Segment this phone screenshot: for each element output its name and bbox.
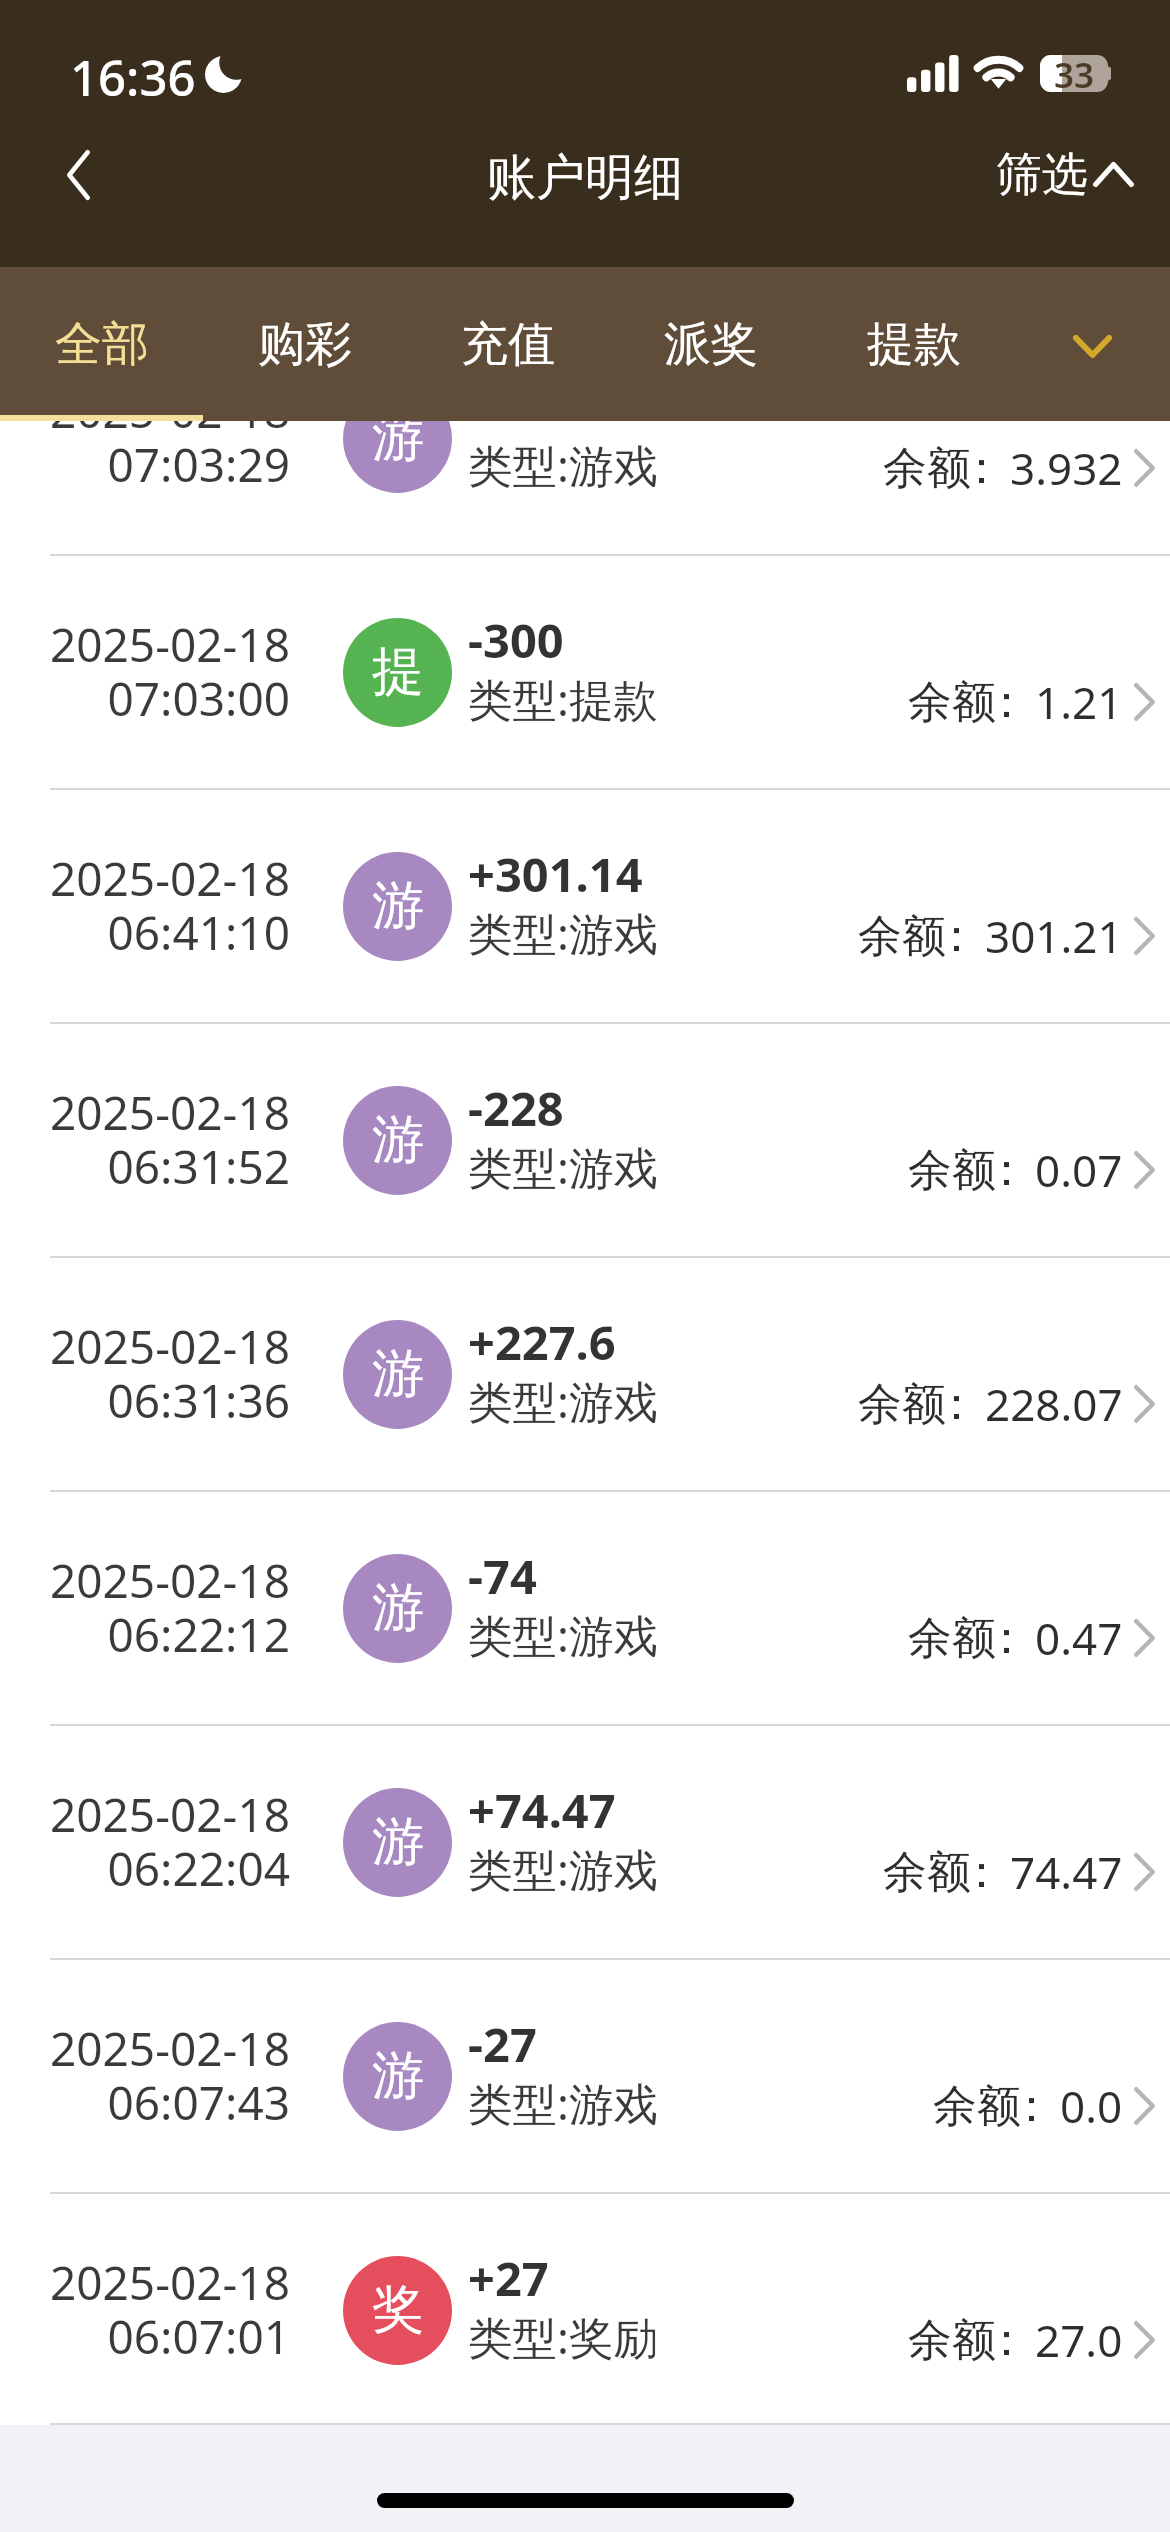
staticText: +301.14 [468, 842, 643, 906]
staticText: 类型:奖励 [468, 2306, 658, 2367]
staticText: 33 [1054, 55, 1095, 88]
staticText: 类型:游戏 [468, 2072, 658, 2133]
staticText: 游 [372, 421, 424, 471]
staticText: -74 [468, 1544, 537, 1608]
staticText: 账户明细 [487, 147, 683, 209]
staticText: 奖 [372, 2277, 424, 2343]
staticText: 类型:游戏 [468, 902, 658, 963]
staticText: 2025-02-18 06:22:12 [48, 1549, 290, 1665]
button[interactable]: 2025-02-18 06:22:12 [0, 1492, 1170, 1724]
staticText: 2025-02-18 07:03:00 [48, 613, 290, 729]
staticText: 提 [372, 639, 424, 705]
staticText: 余额 [883, 1845, 971, 1900]
staticText: 游 [372, 1809, 424, 1875]
button[interactable]: 2025-02-18 07:03:29 [0, 421, 1170, 554]
staticText: ： [984, 1610, 991, 1667]
button[interactable]: 2025-02-18 06:07:01 [0, 2194, 1170, 2425]
button[interactable]: Back [0, 115, 148, 235]
staticText: ： [984, 674, 991, 731]
staticText: ： [984, 2312, 991, 2369]
staticText: -228 [468, 1076, 564, 1140]
button[interactable]: 筛选 [996, 126, 1138, 226]
staticText: 筛选 [996, 146, 1088, 204]
staticText: 2025-02-18 06:22:04 [48, 1783, 290, 1899]
staticText: 购彩 [258, 315, 352, 374]
staticText: 余额 [908, 1143, 996, 1198]
staticText: 2025-02-18 06:31:52 [48, 1081, 290, 1197]
staticText: 余额 [933, 2079, 1021, 2134]
staticText: 余额 [858, 909, 946, 964]
staticText: 余额 [908, 675, 996, 730]
staticText: 提款 [867, 315, 961, 374]
staticText: 类型:提款 [468, 668, 658, 729]
staticText: 3.932 [1010, 438, 1123, 498]
staticText: ： [984, 1142, 991, 1199]
button[interactable]: 充值 [406, 267, 609, 421]
staticText: ： [959, 440, 966, 497]
staticText: 余额 [908, 2313, 996, 2368]
staticText: 16:36 [70, 44, 196, 111]
staticText: -300 [468, 608, 564, 672]
staticText: 2025-02-18 06:31:36 [48, 1315, 290, 1431]
button[interactable]: 购彩 [203, 267, 406, 421]
staticText: 0.0 [1060, 2076, 1123, 2136]
button[interactable]: 2025-02-18 06:22:04 [0, 1726, 1170, 1958]
staticText: 2025-02-18 06:07:43 [48, 2017, 290, 2133]
button[interactable]: 派奖 [609, 267, 812, 421]
staticText: 游 [372, 2043, 424, 2109]
staticText: 游 [372, 1575, 424, 1641]
staticText: 1.21 [1035, 672, 1123, 732]
button[interactable]: 2025-02-18 06:07:43 [0, 1960, 1170, 2192]
staticText: ： [934, 908, 941, 965]
staticText: 充值 [461, 315, 555, 374]
staticText: 游 [372, 1107, 424, 1173]
staticText: ： [1009, 2078, 1016, 2135]
staticText: 类型:游戏 [468, 1370, 658, 1431]
staticText: 0.47 [1035, 1608, 1123, 1668]
staticText: 全部 [55, 315, 149, 374]
staticText: 类型:游戏 [468, 1136, 658, 1197]
staticText: 游 [372, 873, 424, 939]
button[interactable]: 2025-02-18 06:41:10 [0, 790, 1170, 1022]
staticText: 228.07 [985, 1374, 1123, 1434]
staticText: 游 [372, 1341, 424, 1407]
staticText: +227.6 [468, 1310, 616, 1374]
button[interactable]: Expand filters [1015, 267, 1170, 421]
staticText: 类型:游戏 [468, 1604, 658, 1665]
staticText: 74.47 [1010, 1842, 1123, 1902]
staticText: 类型:游戏 [468, 434, 658, 495]
staticText: ： [959, 1844, 966, 1901]
staticText: +74.47 [468, 1778, 616, 1842]
staticText: 余额 [908, 1611, 996, 1666]
staticText: 类型:游戏 [468, 1838, 658, 1899]
staticText: +27 [468, 2246, 549, 2310]
staticText: 0.07 [1035, 1140, 1123, 1200]
staticText: 余额 [858, 1377, 946, 1432]
staticText: 余额 [883, 441, 971, 496]
staticText: 27.0 [1035, 2310, 1123, 2370]
button[interactable]: 2025-02-18 06:31:52 [0, 1024, 1170, 1256]
staticText: 2025-02-18 07:03:29 [48, 421, 290, 495]
staticText: ： [934, 1376, 941, 1433]
staticText: 2025-02-18 06:07:01 [48, 2251, 290, 2367]
staticText: 301.21 [985, 906, 1123, 966]
button[interactable]: 2025-02-18 06:31:36 [0, 1258, 1170, 1490]
staticText: 2025-02-18 06:41:10 [48, 847, 290, 963]
button[interactable]: 提款 [812, 267, 1015, 421]
staticText: 派奖 [664, 315, 758, 374]
button[interactable]: 2025-02-18 07:03:00 [0, 556, 1170, 788]
staticText: -27 [468, 2012, 537, 2076]
button[interactable]: 全部 [0, 267, 203, 421]
